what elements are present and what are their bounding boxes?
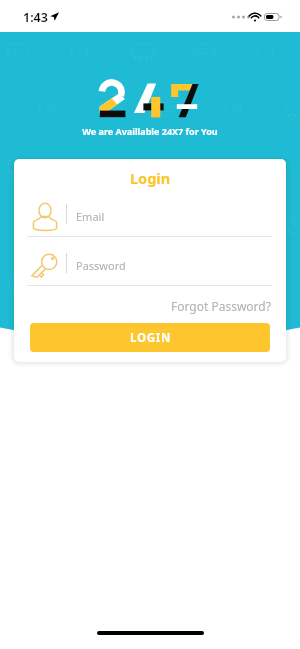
button[interactable]: Forgot Password? xyxy=(169,295,273,317)
other: Password xyxy=(32,251,58,279)
staticText: Forgot Password? xyxy=(171,298,271,314)
staticText: LOGIN xyxy=(130,330,171,346)
staticText: Password xyxy=(76,258,126,273)
staticText: Login xyxy=(130,168,171,188)
button[interactable]: LOGIN xyxy=(30,323,270,352)
staticText: We are Availlable 24X7 for You xyxy=(82,125,218,137)
staticText: 1:43 xyxy=(23,9,48,26)
staticText: Email xyxy=(76,209,105,224)
other: Email xyxy=(32,202,58,230)
